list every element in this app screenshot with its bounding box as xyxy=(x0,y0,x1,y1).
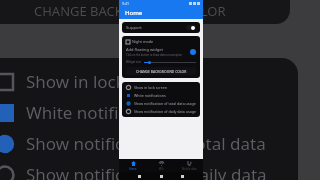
staticText: Show notification of daily data usage xyxy=(134,109,196,114)
button[interactable]: Show notification of daily data usage xyxy=(126,109,196,114)
staticText: Show notification of total data usage xyxy=(134,101,196,106)
staticText: Wifi xyxy=(159,167,164,171)
button[interactable]: Add floating widget xyxy=(126,47,196,57)
staticText: Show in lock screen xyxy=(134,85,167,90)
button[interactable] xyxy=(144,60,196,64)
button[interactable]: Show in lock screen xyxy=(126,85,196,90)
staticText: 9:41 xyxy=(122,1,129,6)
staticText: Show notification of daily data usage xyxy=(26,163,298,180)
button[interactable]: White notifications xyxy=(126,93,196,98)
button[interactable]: Night mode xyxy=(126,39,196,44)
staticText: Support xyxy=(126,25,142,31)
staticText: CHANGE BACKGROUND COLOR xyxy=(136,69,187,74)
staticText: White notifications xyxy=(26,101,176,124)
staticText: Click on the button to show data consump… xyxy=(126,53,183,57)
staticText: Mobile data xyxy=(182,167,197,171)
button[interactable]: Show notification of total data usage xyxy=(126,101,196,106)
button[interactable]: Mobile data xyxy=(175,159,203,172)
staticText: White notifications xyxy=(134,93,166,98)
staticText: Add floating widget xyxy=(126,47,163,52)
button[interactable]: Wifi xyxy=(147,159,175,172)
staticText: Home xyxy=(129,167,137,171)
staticText: Show notification of total data usage xyxy=(26,132,298,155)
staticText: Show in lock screen xyxy=(26,70,182,93)
staticText: CHANGE BACKGROUND COLOR xyxy=(34,2,226,20)
staticText: Widget size xyxy=(126,60,142,64)
other: Add floating widget xyxy=(190,49,196,55)
button[interactable]: Support xyxy=(122,22,200,33)
button[interactable]: Home xyxy=(119,159,147,172)
button[interactable]: Home xyxy=(119,6,203,19)
staticText: Night mode xyxy=(132,39,154,44)
button[interactable]: CHANGE BACKGROUND COLOR xyxy=(126,67,196,75)
staticText: Home xyxy=(125,9,143,17)
